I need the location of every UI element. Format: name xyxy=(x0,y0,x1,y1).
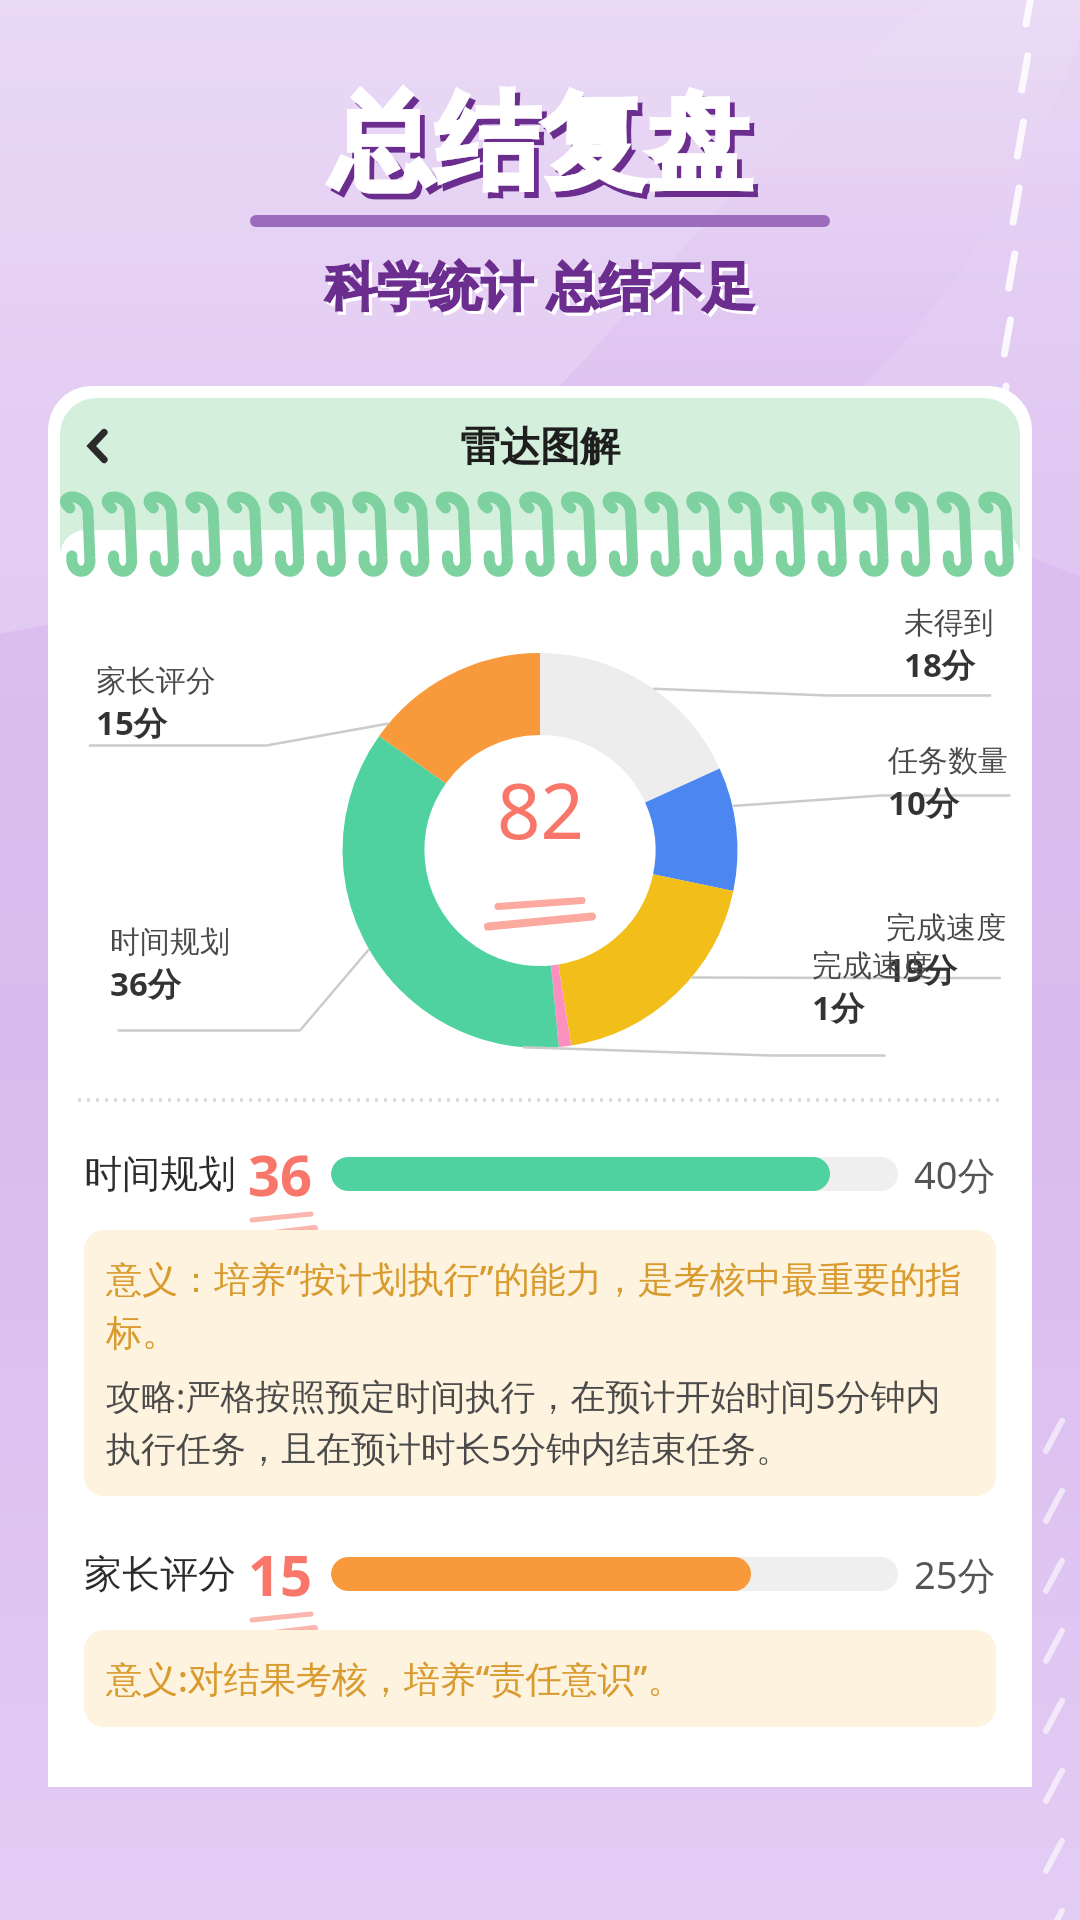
staticText: 10分 xyxy=(888,780,959,825)
staticText: 40分 xyxy=(914,1148,996,1200)
staticText: 时间规划 xyxy=(110,923,230,961)
staticText: 18分 xyxy=(904,642,975,687)
staticText: 总结复盘 xyxy=(328,78,752,209)
staticText: 19分 xyxy=(886,947,957,992)
staticText: 完成速度 xyxy=(812,947,932,985)
staticText: 1分 xyxy=(812,985,864,1030)
staticText: 15 xyxy=(248,1536,313,1612)
button[interactable]: 时间规划 xyxy=(84,1136,996,1212)
staticText: 雷达图解 xyxy=(460,421,620,471)
staticText: 意义:对结果考核，培养“责任意识”。 xyxy=(106,1654,684,1703)
button[interactable]: Back xyxy=(60,408,136,484)
staticText: 意义：培养“按计划执行”的能力，是考核中最重要的指标。 xyxy=(106,1254,974,1356)
staticText: 36分 xyxy=(110,961,181,1006)
staticText: 家长评分 xyxy=(84,1550,236,1598)
staticText: 总结复盘 xyxy=(333,84,757,215)
staticText: 25分 xyxy=(914,1548,996,1600)
staticText: 82 xyxy=(497,758,584,862)
staticText: 36 xyxy=(248,1136,313,1212)
button[interactable]: 家长评分 xyxy=(84,1536,996,1612)
staticText: 任务数量 xyxy=(888,742,1008,780)
staticText: 未得到 xyxy=(904,604,994,642)
staticText: 完成速度 xyxy=(886,909,1006,947)
staticText: 时间规划 xyxy=(84,1150,236,1198)
staticText: 15分 xyxy=(96,700,167,745)
staticText: 科学统计 总结不足 xyxy=(325,249,755,320)
staticText: 科学统计 总结不足 xyxy=(328,252,758,323)
staticText: 家长评分 xyxy=(96,662,216,700)
staticText: 攻略:严格按照预定时间执行，在预计开始时间5分钟内执行任务，且在预计时长5分钟内… xyxy=(106,1372,974,1472)
